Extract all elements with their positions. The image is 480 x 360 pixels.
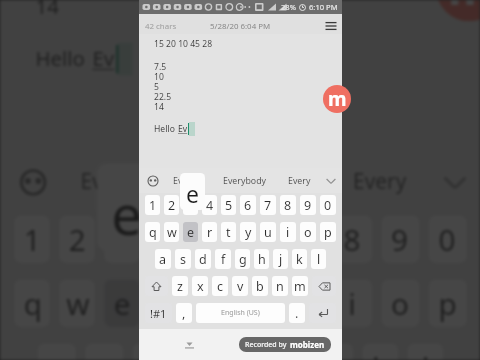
button[interactable]: !#1 bbox=[145, 303, 172, 323]
staticText: t bbox=[206, 284, 218, 325]
staticText: y bbox=[245, 224, 252, 241]
button[interactable]: l bbox=[408, 343, 443, 360]
staticText: 9 bbox=[391, 220, 410, 261]
button[interactable]: 6 bbox=[240, 195, 256, 215]
button[interactable]: p bbox=[320, 222, 336, 242]
button[interactable]: More suggestions bbox=[323, 173, 339, 189]
button[interactable]: t bbox=[194, 279, 230, 327]
button[interactable]: Everybody bbox=[199, 168, 303, 196]
button[interactable]: r bbox=[149, 279, 185, 327]
button[interactable]: q bbox=[14, 279, 50, 327]
button[interactable]: d bbox=[195, 249, 211, 269]
button[interactable]: 2 bbox=[164, 195, 179, 215]
button[interactable]: p bbox=[429, 279, 467, 327]
button[interactable]: c bbox=[212, 276, 228, 296]
button[interactable]: m bbox=[292, 276, 308, 296]
button[interactable]: Everybody bbox=[223, 175, 267, 187]
button[interactable]: a bbox=[155, 249, 171, 269]
button[interactable]: English (US) bbox=[196, 303, 285, 323]
button[interactable]: o bbox=[381, 279, 419, 327]
button[interactable]: 7 bbox=[260, 195, 276, 215]
button[interactable]: g bbox=[227, 343, 263, 360]
staticText: 9 bbox=[304, 197, 312, 214]
button[interactable]: w bbox=[164, 222, 179, 242]
button[interactable]: Enter bbox=[309, 303, 336, 323]
staticText: u bbox=[296, 284, 315, 325]
button[interactable]: 4 bbox=[149, 215, 185, 263]
button[interactable]: e bbox=[183, 222, 198, 242]
staticText: e bbox=[187, 224, 195, 241]
staticText: 15 20 10 45 28 bbox=[154, 38, 213, 50]
staticText: 1 bbox=[24, 220, 43, 261]
button[interactable]: z bbox=[172, 276, 188, 296]
button[interactable]: Hide keyboard bbox=[179, 335, 199, 355]
button[interactable]: u bbox=[260, 222, 276, 242]
button[interactable]: h bbox=[272, 343, 308, 360]
staticText: 1 bbox=[149, 197, 157, 214]
button[interactable]: 2 bbox=[59, 215, 95, 263]
button[interactable]: i bbox=[280, 222, 296, 242]
button[interactable]: 0 bbox=[429, 215, 467, 263]
button[interactable]: j bbox=[317, 343, 353, 360]
button[interactable]: k bbox=[363, 343, 398, 360]
button[interactable]: 9 bbox=[300, 195, 316, 215]
button[interactable]: 5 bbox=[221, 195, 236, 215]
button[interactable]: k bbox=[292, 249, 307, 269]
staticText: 7 bbox=[296, 220, 315, 261]
button[interactable]: t bbox=[221, 222, 236, 242]
button[interactable]: s bbox=[85, 343, 123, 360]
button[interactable]: u bbox=[287, 279, 325, 327]
button[interactable]: a bbox=[38, 343, 76, 360]
button[interactable]: n bbox=[272, 276, 288, 296]
staticText: h bbox=[258, 251, 266, 268]
button[interactable]: g bbox=[235, 249, 250, 269]
button[interactable]: e bbox=[104, 279, 140, 327]
button[interactable]: h bbox=[254, 249, 269, 269]
staticText: l bbox=[317, 251, 321, 268]
button[interactable]: v bbox=[232, 276, 248, 296]
button[interactable]: Every bbox=[288, 175, 311, 187]
button[interactable]: j bbox=[273, 249, 288, 269]
button[interactable]: 4 bbox=[202, 195, 217, 215]
button[interactable]: Eve bbox=[80, 168, 116, 196]
button[interactable]: 9 bbox=[381, 215, 419, 263]
button[interactable]: d bbox=[133, 343, 171, 360]
button[interactable]: 3 bbox=[104, 215, 140, 263]
button[interactable]: Change keyboard bbox=[144, 172, 162, 190]
button[interactable]: . bbox=[289, 303, 305, 323]
button[interactable]: o bbox=[300, 222, 316, 242]
button[interactable]: Menu bbox=[320, 18, 342, 34]
button[interactable]: 0 bbox=[320, 195, 336, 215]
button[interactable]: 8 bbox=[334, 215, 372, 263]
button[interactable]: s bbox=[175, 249, 191, 269]
button[interactable]: 7 bbox=[287, 215, 325, 263]
button[interactable]: b bbox=[252, 276, 268, 296]
button[interactable]: Change keyboard bbox=[12, 161, 54, 204]
button[interactable]: q bbox=[145, 222, 160, 242]
button[interactable]: y bbox=[239, 279, 277, 327]
button[interactable]: x bbox=[192, 276, 208, 296]
button[interactable]: 3 bbox=[183, 195, 198, 215]
button[interactable]: r bbox=[202, 222, 217, 242]
button[interactable]: Every bbox=[353, 168, 408, 196]
button[interactable]: 1 bbox=[145, 195, 160, 215]
button[interactable]: Eve bbox=[173, 175, 188, 187]
staticText: n bbox=[276, 278, 284, 295]
button[interactable]: y bbox=[240, 222, 256, 242]
staticText: Hello bbox=[154, 123, 178, 135]
button[interactable]: f bbox=[180, 343, 218, 360]
button[interactable]: 5 bbox=[194, 215, 230, 263]
button[interactable]: l bbox=[311, 249, 326, 269]
staticText: 28% bbox=[281, 2, 296, 12]
button[interactable]: w bbox=[59, 279, 95, 327]
button[interactable]: Shift bbox=[145, 276, 168, 296]
button[interactable]: i bbox=[334, 279, 372, 327]
button[interactable]: 6 bbox=[239, 215, 277, 263]
button[interactable]: , bbox=[176, 303, 192, 323]
button[interactable]: 1 bbox=[14, 215, 50, 263]
button[interactable]: Backspace bbox=[312, 276, 336, 296]
button[interactable]: f bbox=[215, 249, 231, 269]
button[interactable]: 8 bbox=[280, 195, 296, 215]
